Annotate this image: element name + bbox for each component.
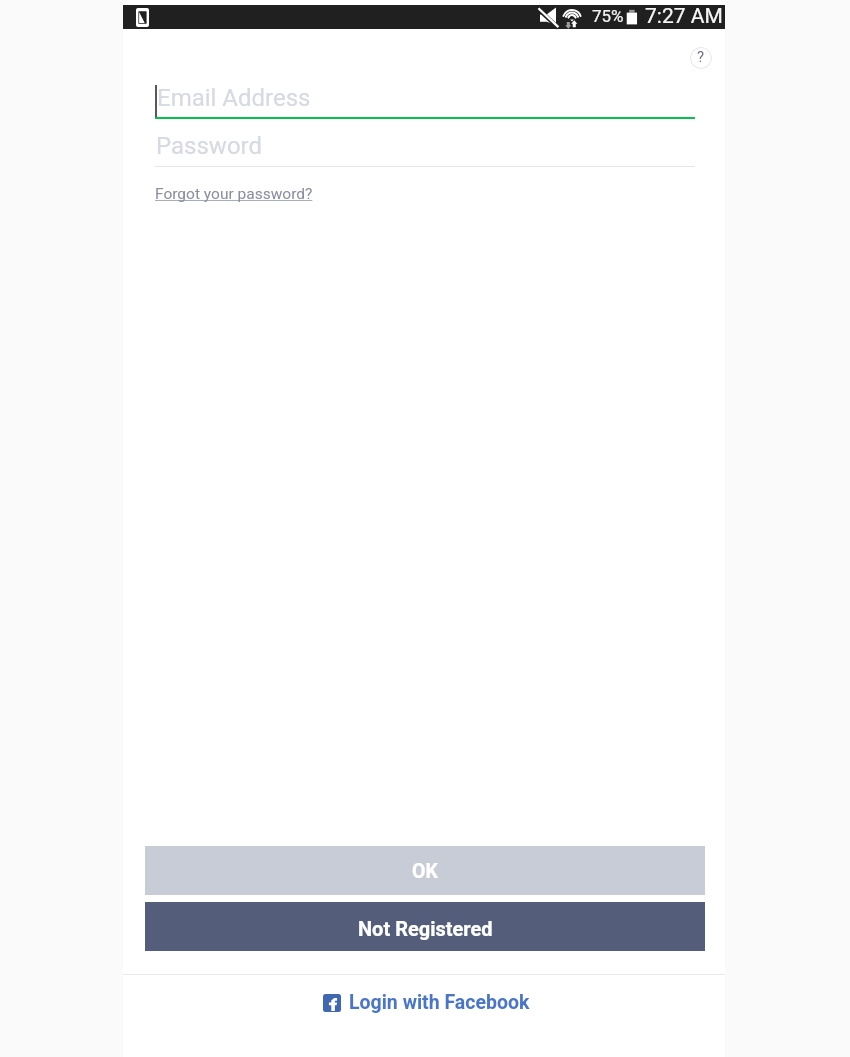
staticText: OK xyxy=(412,860,438,883)
staticText: Email Address xyxy=(157,84,311,112)
staticText: 75% xyxy=(592,6,624,26)
button[interactable]: Login with Facebook xyxy=(309,985,543,1019)
staticText: Password xyxy=(156,132,263,160)
button[interactable]: Not Registered xyxy=(145,902,705,951)
button[interactable]: Forgot your password? xyxy=(155,185,313,203)
staticText: Forgot your password? xyxy=(155,185,313,203)
staticText: Login with Facebook xyxy=(349,991,530,1014)
button[interactable]: Password xyxy=(155,125,695,166)
staticText: Not Registered xyxy=(358,917,493,940)
button[interactable]: Help xyxy=(690,47,712,69)
staticText: ? xyxy=(697,48,705,66)
button[interactable]: Email Address xyxy=(155,76,695,118)
staticText: 7:27 AM xyxy=(645,4,723,28)
button[interactable]: OK xyxy=(145,846,705,895)
